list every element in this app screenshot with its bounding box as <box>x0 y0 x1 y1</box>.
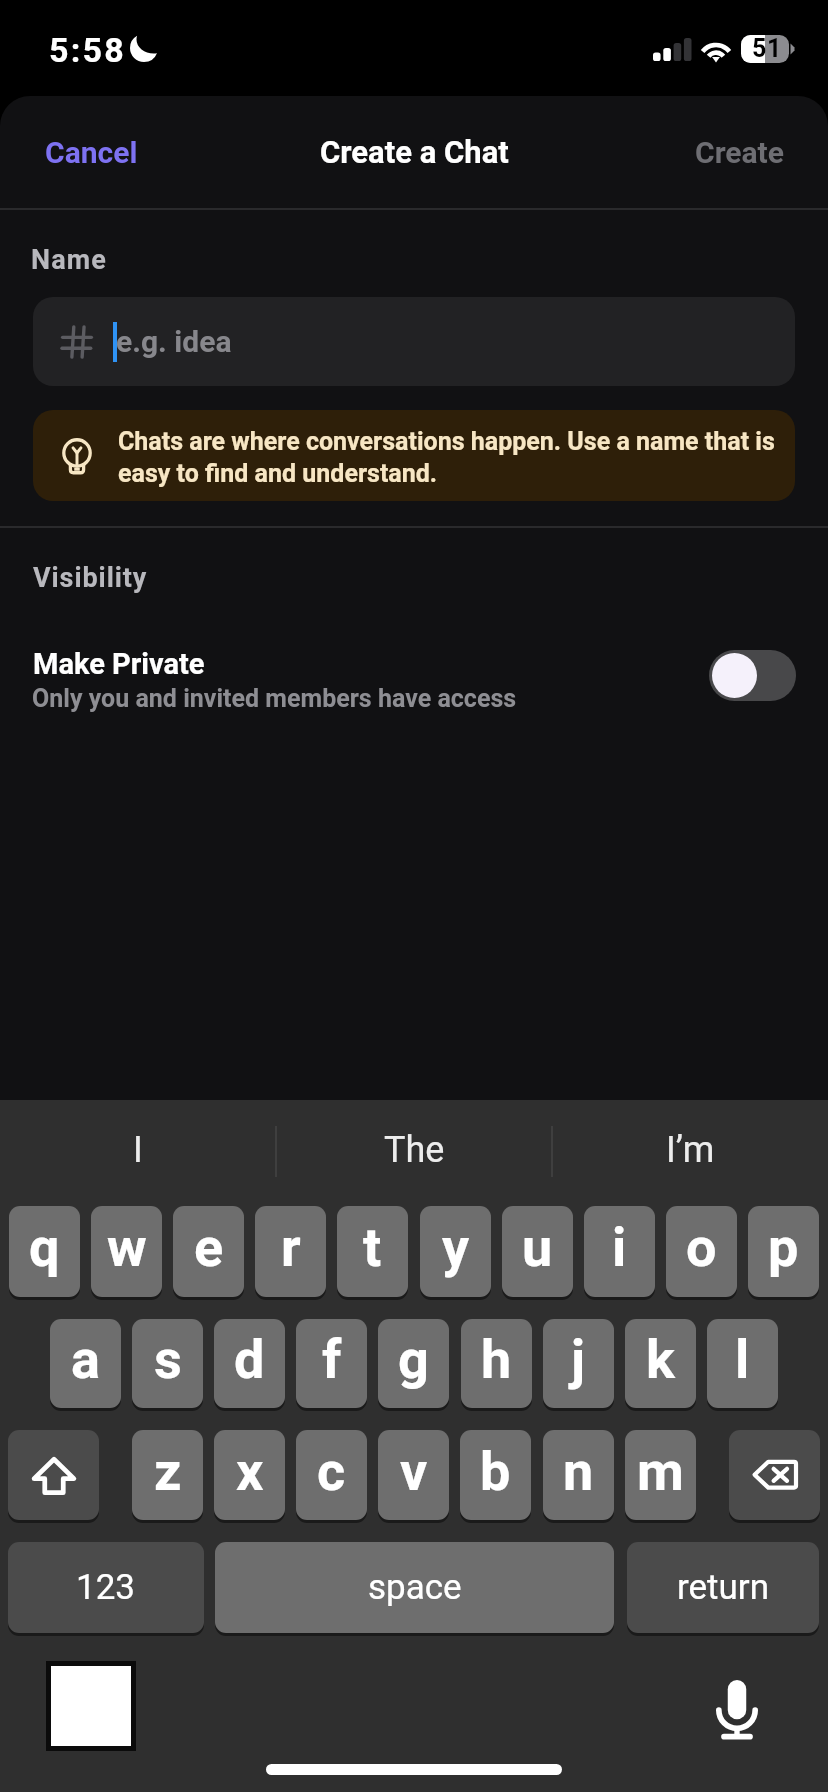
staticText: u <box>522 1216 553 1279</box>
staticText: r <box>281 1216 301 1279</box>
button[interactable]: g <box>378 1319 449 1408</box>
button[interactable]: Make Private toggle, off <box>709 650 796 701</box>
staticText: Create <box>695 135 784 170</box>
staticText: x <box>236 1440 264 1503</box>
staticText: space <box>368 1567 462 1608</box>
button[interactable]: Cancel <box>0 96 162 208</box>
staticText: p <box>768 1216 799 1279</box>
staticText: f <box>322 1328 342 1391</box>
staticText: q <box>29 1216 60 1279</box>
staticText: j <box>571 1328 586 1391</box>
staticText: I’m <box>666 1129 715 1171</box>
button[interactable]: 123 <box>8 1542 204 1633</box>
staticText: e.g. idea <box>116 324 232 359</box>
staticText: i <box>612 1216 627 1279</box>
button[interactable]: return <box>627 1542 819 1633</box>
button[interactable]: space <box>215 1542 614 1633</box>
staticText: m <box>637 1440 684 1503</box>
button[interactable]: e <box>173 1206 244 1297</box>
button[interactable]: v <box>378 1430 449 1520</box>
button[interactable]: j <box>543 1319 614 1408</box>
staticText: I <box>133 1129 143 1171</box>
button[interactable]: h <box>461 1319 532 1408</box>
staticText: h <box>481 1328 512 1391</box>
staticText: v <box>400 1440 428 1503</box>
staticText: l <box>735 1328 750 1391</box>
button[interactable]: n <box>543 1430 614 1520</box>
button[interactable]: l <box>707 1319 778 1408</box>
button[interactable]: a <box>50 1319 121 1408</box>
button[interactable]: r <box>255 1206 326 1297</box>
staticText: e <box>194 1216 224 1279</box>
button[interactable]: Create <box>671 96 828 208</box>
staticText: Create a Chat <box>320 134 509 170</box>
button[interactable]: I <box>0 1100 276 1201</box>
button[interactable]: I’m <box>553 1100 828 1201</box>
staticText: w <box>107 1216 147 1279</box>
button[interactable]: Shift <box>8 1430 99 1520</box>
staticText: The <box>384 1129 445 1171</box>
button[interactable]: u <box>502 1206 573 1297</box>
staticText: n <box>563 1440 594 1503</box>
staticText: g <box>398 1328 429 1391</box>
button[interactable]: s <box>132 1319 203 1408</box>
button[interactable]: d <box>214 1319 285 1408</box>
staticText: Name <box>31 244 107 276</box>
button[interactable]: Chats are where conversations happen. Us… <box>33 410 795 501</box>
button[interactable]: i <box>584 1206 655 1297</box>
staticText: s <box>154 1328 182 1391</box>
button[interactable]: Dictate <box>702 1666 772 1736</box>
button[interactable]: The <box>277 1100 552 1201</box>
button[interactable]: t <box>337 1206 408 1297</box>
button[interactable]: f <box>296 1319 367 1408</box>
button[interactable]: e.g. idea <box>33 297 795 386</box>
staticText: z <box>154 1440 182 1503</box>
button[interactable]: b <box>460 1430 531 1520</box>
staticText: Cancel <box>45 135 138 170</box>
staticText: return <box>677 1567 770 1608</box>
button[interactable]: p <box>748 1206 819 1297</box>
staticText: 5:58 <box>49 30 126 70</box>
button[interactable]: y <box>420 1206 491 1297</box>
button[interactable]: Make Private <box>0 626 828 706</box>
button[interactable]: q <box>9 1206 80 1297</box>
staticText: y <box>442 1216 470 1279</box>
button[interactable]: m <box>625 1430 696 1520</box>
staticText: a <box>71 1328 100 1391</box>
staticText: o <box>686 1216 717 1279</box>
staticText: 51 <box>752 34 782 62</box>
button[interactable]: x <box>214 1430 285 1520</box>
staticText: Chats are where conversations happen. Us… <box>118 427 778 488</box>
staticText: k <box>646 1328 675 1391</box>
button[interactable]: c <box>296 1430 367 1520</box>
staticText: Visibility <box>33 562 148 594</box>
button[interactable]: z <box>132 1430 203 1520</box>
staticText: b <box>480 1440 511 1503</box>
staticText: Make Private <box>33 647 205 681</box>
button[interactable]: k <box>625 1319 696 1408</box>
staticText: d <box>234 1328 265 1391</box>
button[interactable]: Backspace <box>729 1430 820 1520</box>
staticText: 123 <box>76 1567 136 1608</box>
button[interactable]: w <box>91 1206 162 1297</box>
staticText: c <box>317 1440 346 1503</box>
staticText: t <box>363 1216 382 1279</box>
button[interactable]: o <box>666 1206 737 1297</box>
staticText: Only you and invited members have access <box>32 684 517 713</box>
